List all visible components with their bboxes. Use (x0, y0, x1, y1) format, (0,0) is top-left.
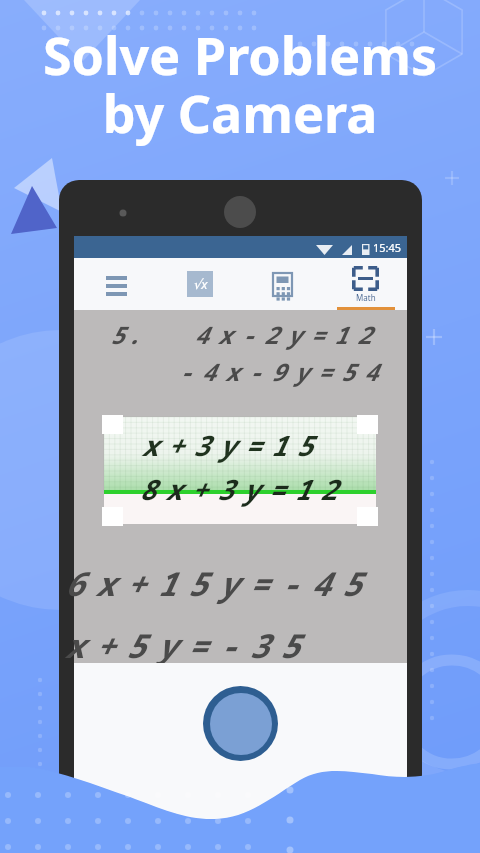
staticText: 8x+3y=12 (139, 470, 346, 508)
button[interactable]: Math (324, 258, 407, 310)
staticText: x+5y=-35 (64, 623, 311, 668)
staticText: x+3y=15 (141, 426, 322, 464)
button[interactable]: Capture (203, 686, 278, 761)
staticText: 4x-2y=12 (194, 318, 380, 351)
staticText: 5. (110, 318, 143, 351)
staticText: Math (356, 292, 376, 303)
button[interactable]: Menu (74, 258, 158, 310)
button[interactable]: Square root (158, 258, 241, 310)
staticText: √x (193, 275, 208, 293)
staticText: -4x-9y=54 (178, 355, 387, 388)
staticText: 15:45 (373, 240, 402, 255)
staticText: Solve Problems by Camera (0, 19, 480, 149)
button[interactable]: Calculator (241, 258, 324, 310)
staticText: 6x+15y=-45 (64, 561, 373, 606)
